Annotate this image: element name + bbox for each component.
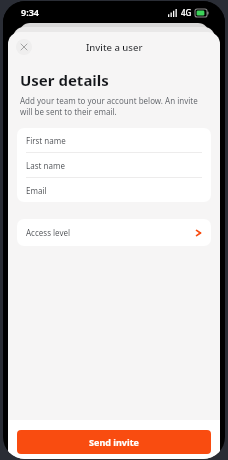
staticText: Email xyxy=(26,185,47,196)
button[interactable]: First name xyxy=(17,128,211,152)
staticText: Send invite xyxy=(89,436,139,448)
button[interactable]: Close xyxy=(16,39,32,55)
button[interactable]: Last name xyxy=(17,153,211,177)
staticText: Add your team to your account below. An … xyxy=(20,95,206,117)
button[interactable]: Send invite xyxy=(17,430,211,454)
staticText: Last name xyxy=(26,160,65,171)
staticText: Invite a user xyxy=(86,41,143,54)
staticText: 4G xyxy=(181,7,192,18)
staticText: First name xyxy=(26,135,66,146)
staticText: 9:34 xyxy=(21,6,39,18)
button[interactable]: Access level xyxy=(17,219,211,246)
staticText: User details xyxy=(20,70,109,90)
button[interactable]: Email xyxy=(17,178,211,202)
staticText: Access level xyxy=(26,227,195,238)
